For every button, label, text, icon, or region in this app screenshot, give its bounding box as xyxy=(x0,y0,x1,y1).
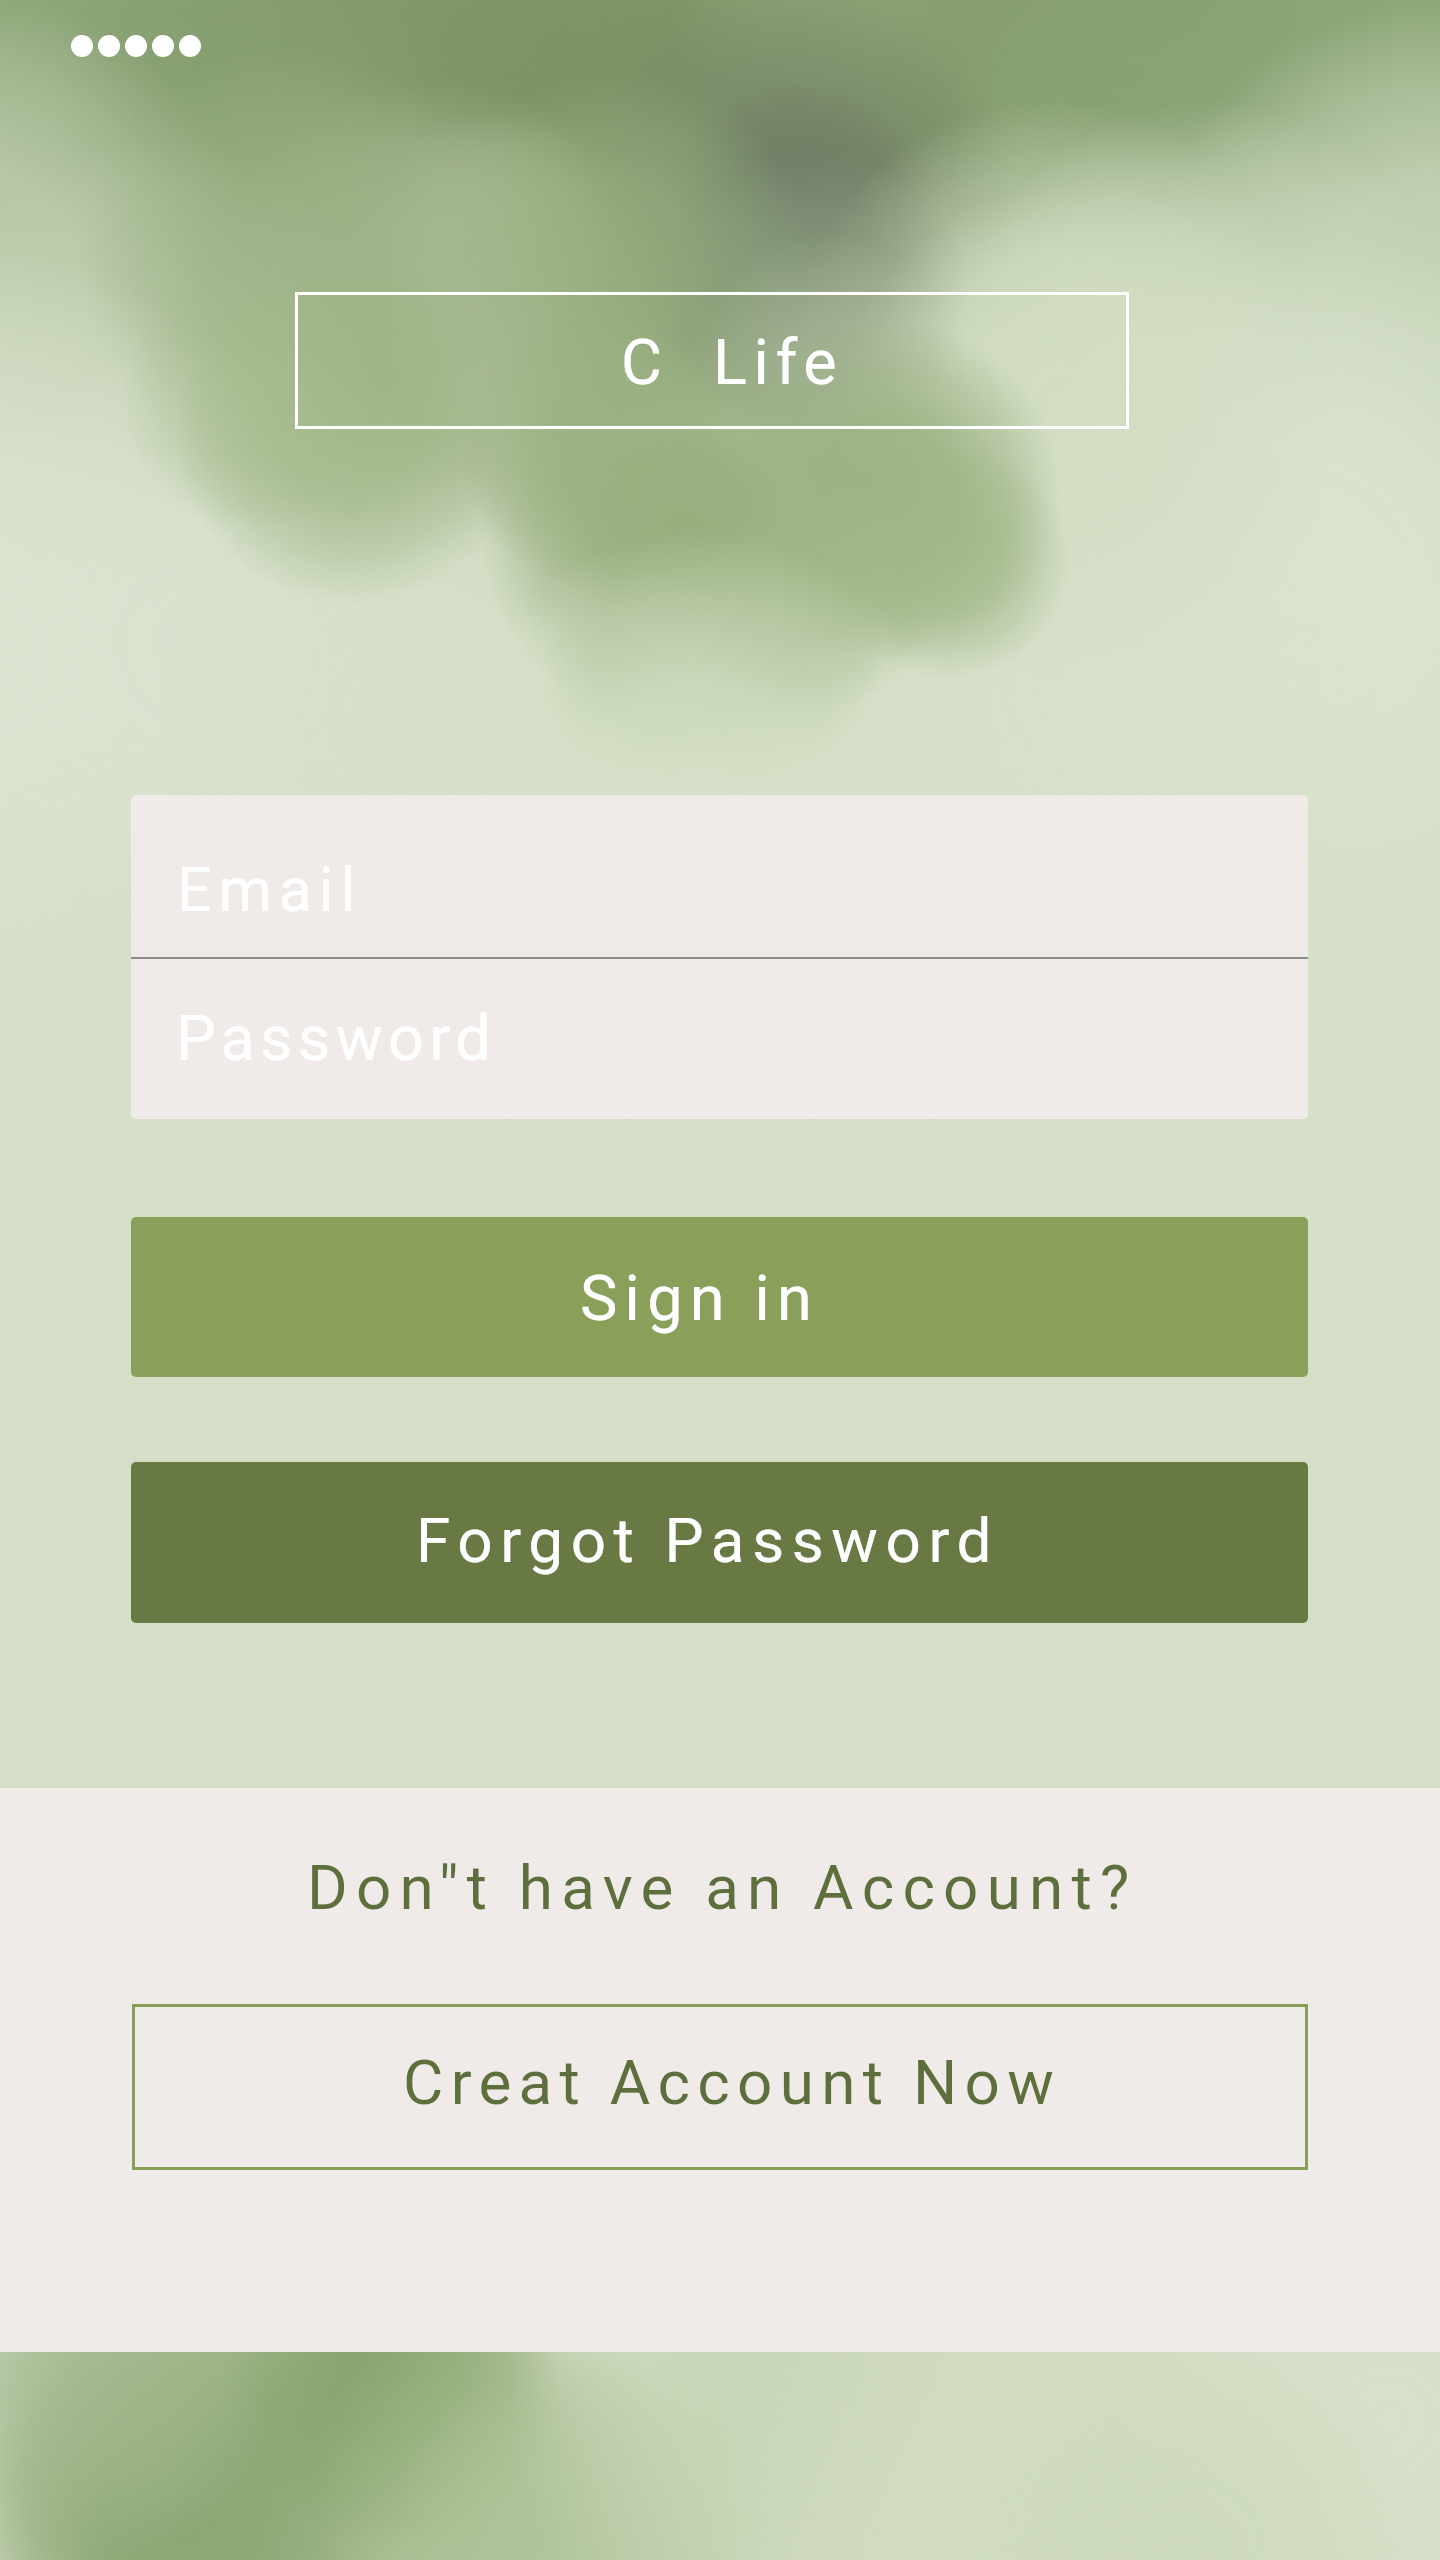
button[interactable]: Forgot Password xyxy=(131,1462,1308,1623)
staticText: Password xyxy=(176,1002,496,1076)
staticText: Email xyxy=(177,854,363,925)
staticText: Forgot Password xyxy=(416,1504,1000,1577)
staticText: Don"t have an Account? xyxy=(307,1851,1138,1924)
staticText: Creat Account Now xyxy=(403,2046,1062,2119)
button[interactable]: C Life xyxy=(295,292,1129,429)
button[interactable]: Password xyxy=(131,959,1308,1119)
staticText: C Life xyxy=(621,326,844,400)
button[interactable]: Creat Account Now xyxy=(132,2004,1308,2170)
staticText: Sign in xyxy=(580,1262,820,1336)
other: Page indicator xyxy=(71,35,201,57)
button[interactable]: Sign in xyxy=(131,1217,1308,1377)
